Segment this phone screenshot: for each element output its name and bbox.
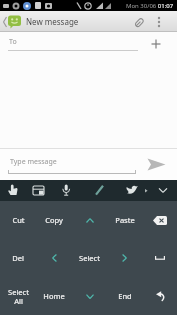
button[interactable] [147,180,177,201]
staticText: Paste [115,215,135,225]
button[interactable]: End [107,277,142,315]
button[interactable]: Cut [0,201,36,239]
staticText: To [9,37,17,47]
button[interactable] [117,180,147,201]
button[interactable]: To [0,32,177,55]
staticText: Copy [45,215,63,225]
button[interactable]: Select [72,239,107,277]
button[interactable]: Select All [0,277,36,315]
button[interactable] [142,201,177,239]
button[interactable]: Home [36,277,72,315]
button[interactable] [87,180,117,201]
staticText: Select All [8,287,29,306]
button[interactable] [72,277,107,315]
button[interactable]: Del [0,239,36,277]
button[interactable] [0,180,29,201]
button[interactable] [107,239,142,277]
button[interactable] [143,32,169,55]
button[interactable] [72,201,107,239]
staticText: Cut [12,215,25,225]
button[interactable] [142,277,177,315]
button[interactable] [29,180,58,201]
button[interactable] [129,12,149,32]
button[interactable] [36,239,72,277]
button[interactable] [58,180,87,201]
staticText: Mon 30/06 01:07 [126,2,174,10]
button[interactable]: Copy [36,201,72,239]
button[interactable] [141,149,171,180]
button[interactable]: New message [0,11,177,32]
button[interactable] [142,239,177,277]
button[interactable] [149,12,169,32]
staticText: Home [43,291,65,301]
button[interactable]: Paste [107,201,142,239]
staticText: Del [12,253,24,263]
staticText: End [118,291,132,301]
staticText: Select [79,253,100,263]
staticText: Type message [10,157,57,167]
staticText: New message [26,16,79,27]
